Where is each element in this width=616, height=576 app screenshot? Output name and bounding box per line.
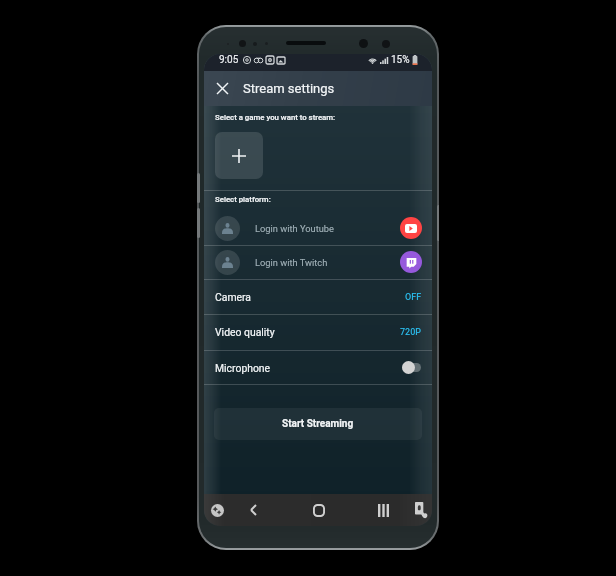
staticText: Microphone (215, 362, 271, 374)
button[interactable]: Video quality (204, 314, 432, 350)
staticText: Stream settings (243, 81, 335, 96)
button[interactable]: Screenshot (408, 497, 432, 523)
button[interactable]: Login with Twitch (204, 245, 432, 279)
button[interactable]: Back (240, 497, 266, 523)
staticText: 9:05 (219, 54, 239, 66)
staticText: Login with Youtube (255, 223, 334, 234)
button[interactable]: Add game (215, 132, 263, 179)
staticText: 720P (400, 327, 422, 338)
button[interactable]: Start Streaming (214, 408, 422, 440)
staticText: Login with Twitch (255, 257, 328, 268)
staticText: Camera (215, 291, 252, 303)
button[interactable]: Home (306, 497, 332, 523)
staticText: Select a game you want to stream: (215, 113, 336, 122)
button[interactable]: Close (211, 77, 234, 100)
staticText: 15% (391, 54, 410, 66)
button[interactable]: Login with Youtube (204, 211, 432, 245)
staticText: Start Streaming (282, 418, 354, 430)
button[interactable]: Camera (204, 279, 432, 315)
button[interactable]: Recents (370, 497, 396, 523)
button[interactable]: Assistant (204, 497, 230, 523)
staticText: OFF (405, 292, 422, 303)
staticText: Select platform: (215, 195, 271, 204)
staticText: Video quality (215, 326, 275, 338)
button[interactable]: Microphone (204, 350, 432, 385)
